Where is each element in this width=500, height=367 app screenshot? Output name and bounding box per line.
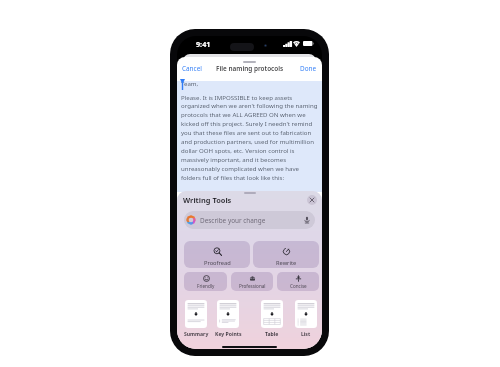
button[interactable]: Cancel	[177, 61, 207, 76]
staticText: Key Points	[215, 331, 242, 338]
staticText: Describe your change	[200, 216, 266, 225]
button[interactable]	[295, 300, 317, 328]
button[interactable]	[185, 300, 207, 328]
staticText: Concise	[290, 283, 307, 289]
staticText: Team,	[181, 79, 199, 87]
button[interactable]	[261, 300, 283, 328]
button[interactable]: Proofread	[184, 241, 250, 268]
staticText: Table	[265, 331, 279, 338]
staticText: Friendly	[197, 283, 215, 289]
staticText: File naming protocols	[216, 64, 284, 73]
staticText: List	[301, 331, 311, 338]
staticText: 9:41	[196, 39, 211, 49]
button[interactable]: Professional	[231, 272, 273, 291]
staticText: Proofread	[204, 259, 231, 267]
staticText: Rewrite	[276, 259, 297, 267]
button[interactable]: Friendly	[184, 272, 227, 291]
staticText: Done	[300, 64, 317, 73]
staticText: Professional	[239, 283, 266, 289]
button[interactable]	[217, 300, 239, 328]
staticText: Summary	[184, 331, 209, 338]
staticText: Please. It is IMPOSSIBLE to keep assets …	[181, 93, 318, 182]
button[interactable]: Done	[295, 61, 322, 76]
button[interactable]: Concise	[277, 272, 319, 291]
button[interactable]: Describe your change	[184, 211, 315, 229]
staticText: Cancel	[182, 64, 202, 73]
staticText: Writing Tools	[183, 195, 232, 205]
button[interactable]: Rewrite	[253, 241, 319, 268]
button[interactable]: Close Writing Tools	[307, 195, 317, 205]
